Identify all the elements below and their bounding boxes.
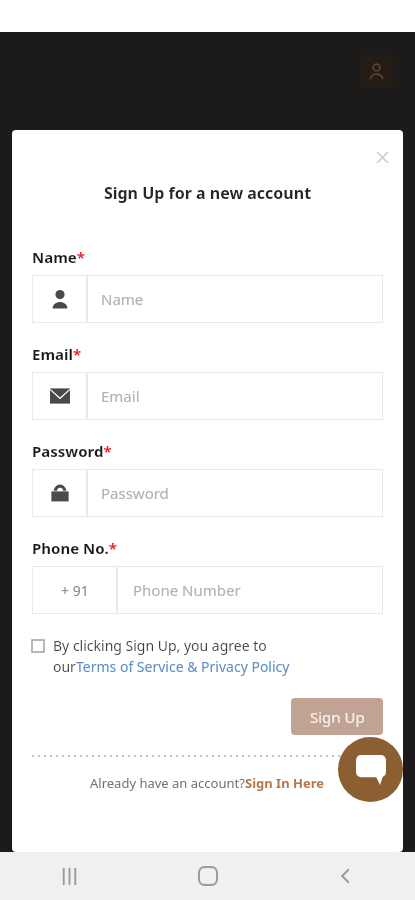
staticText: Name* — [32, 247, 85, 267]
staticText: Already have an account? — [90, 774, 245, 792]
button[interactable]: By clicking Sign Up, you agree to — [32, 636, 383, 676]
button[interactable]: Home — [185, 853, 231, 899]
button[interactable]: Email — [32, 372, 383, 420]
staticText: Email* — [32, 344, 82, 364]
button[interactable]: Password — [32, 469, 383, 517]
button[interactable]: Chat — [338, 737, 403, 802]
button[interactable]: Terms of Service & Privacy Policy — [76, 657, 290, 676]
staticText: By clicking Sign Up, you agree to — [53, 636, 267, 655]
staticText: Password — [101, 483, 169, 503]
staticText: Phone Number — [133, 580, 241, 600]
staticText: Name — [101, 289, 144, 309]
staticText: Password* — [32, 441, 112, 461]
button[interactable]: Sign Up — [291, 698, 383, 735]
button[interactable]: Back — [323, 853, 369, 899]
button[interactable]: Sign In Here — [245, 774, 325, 792]
button[interactable]: + 91 — [32, 566, 383, 614]
button[interactable]: Account — [360, 55, 393, 88]
button[interactable]: Name — [32, 275, 383, 323]
button[interactable]: Recents — [46, 853, 92, 899]
staticText: Phone No.* — [32, 538, 117, 558]
staticText: Sign Up — [310, 707, 365, 727]
staticText: our — [53, 657, 76, 676]
button[interactable]: Close — [367, 142, 397, 172]
staticText: + 91 — [61, 581, 89, 600]
staticText: Email — [101, 386, 140, 406]
staticText: Sign Up for a new account — [12, 182, 403, 204]
